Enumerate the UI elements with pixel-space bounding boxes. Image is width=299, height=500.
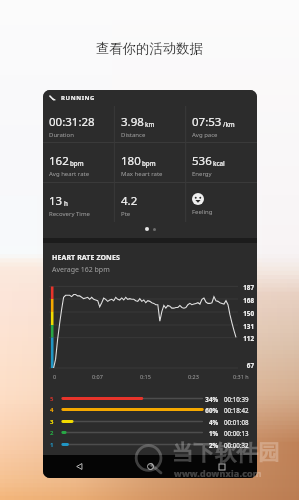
staticText: 4.2	[121, 193, 138, 209]
staticText: 0:15	[140, 373, 151, 380]
staticText: 180	[121, 153, 141, 169]
staticText: 536	[192, 153, 212, 169]
staticText: 60%	[192, 406, 218, 414]
staticText: Max heart rate	[121, 170, 163, 178]
staticText: 67	[227, 361, 254, 370]
staticText: 150	[227, 309, 254, 318]
staticText: h	[64, 199, 68, 207]
staticText: 07:53	[192, 114, 222, 130]
staticText: 1	[50, 441, 54, 449]
button[interactable]: RUNNING	[43, 90, 257, 106]
staticText: 0:07	[92, 373, 103, 380]
button[interactable]: 3	[43, 416, 257, 427]
button[interactable]: 1	[43, 439, 257, 450]
staticText: 3.98	[121, 114, 144, 130]
staticText: 查看你的活动数据	[0, 40, 299, 57]
staticText: 34%	[192, 395, 218, 403]
staticText: www.downxia.com	[174, 467, 262, 479]
staticText: Energy	[192, 170, 212, 178]
button[interactable]: 07:53	[186, 106, 257, 142]
staticText: 4	[50, 406, 54, 414]
button[interactable]: Recents	[186, 455, 257, 478]
staticText: 1%	[192, 429, 218, 437]
button[interactable]: 00:31:28	[43, 106, 115, 142]
staticText: Pte	[121, 210, 131, 218]
staticText: kcal	[213, 159, 225, 167]
staticText: Distance	[121, 131, 146, 139]
staticText: 2	[50, 429, 54, 437]
button[interactable]: Home	[115, 455, 186, 478]
staticText: 4%	[192, 418, 218, 426]
button[interactable]: Back	[43, 455, 115, 478]
staticText: 0:31 h	[233, 373, 249, 380]
button[interactable]: 162	[43, 142, 115, 182]
staticText: Average 162 bpm	[52, 265, 110, 275]
staticText: Avg pace	[192, 131, 218, 139]
staticText: bpm	[70, 159, 84, 167]
staticText: 112	[227, 334, 254, 343]
staticText: /km	[223, 120, 235, 128]
button[interactable]: 3.98	[115, 106, 186, 142]
staticText: 187	[227, 283, 254, 292]
staticText: 131	[227, 322, 254, 331]
staticText: Avg heart rate	[49, 170, 90, 178]
staticText: 5	[50, 395, 54, 403]
staticText: 00:00:32	[224, 441, 249, 449]
staticText: 13	[49, 193, 63, 209]
staticText: 2%	[192, 441, 218, 449]
button[interactable]: 4.2	[115, 182, 186, 222]
button[interactable]: Feeling	[186, 182, 257, 222]
staticText: 当下软件园	[172, 439, 280, 466]
staticText: 168	[227, 296, 254, 305]
button[interactable]: 4	[43, 404, 257, 415]
button[interactable]: 180	[115, 142, 186, 182]
staticText: HEART RATE ZONES	[52, 253, 120, 263]
staticText: Feeling	[192, 208, 213, 216]
staticText: 0:23	[188, 373, 199, 380]
staticText: km	[145, 120, 155, 128]
staticText: 00:31:28	[49, 114, 95, 130]
staticText: 3	[50, 418, 54, 426]
button[interactable]: 13	[43, 182, 115, 222]
staticText: 00:00:13	[224, 429, 249, 437]
button[interactable]: 5	[43, 393, 257, 404]
button[interactable]: 536	[186, 142, 257, 182]
staticText: 00:01:08	[224, 418, 249, 426]
button[interactable]: 2	[43, 427, 257, 438]
staticText: bpm	[142, 159, 156, 167]
staticText: Duration	[49, 131, 74, 139]
staticText: 00:10:39	[224, 395, 249, 403]
staticText: 0	[53, 373, 57, 380]
staticText: 00:18:42	[224, 406, 249, 414]
staticText: 162	[49, 153, 69, 169]
staticText: Recovery Time	[49, 210, 90, 218]
staticText: RUNNING	[61, 94, 95, 102]
